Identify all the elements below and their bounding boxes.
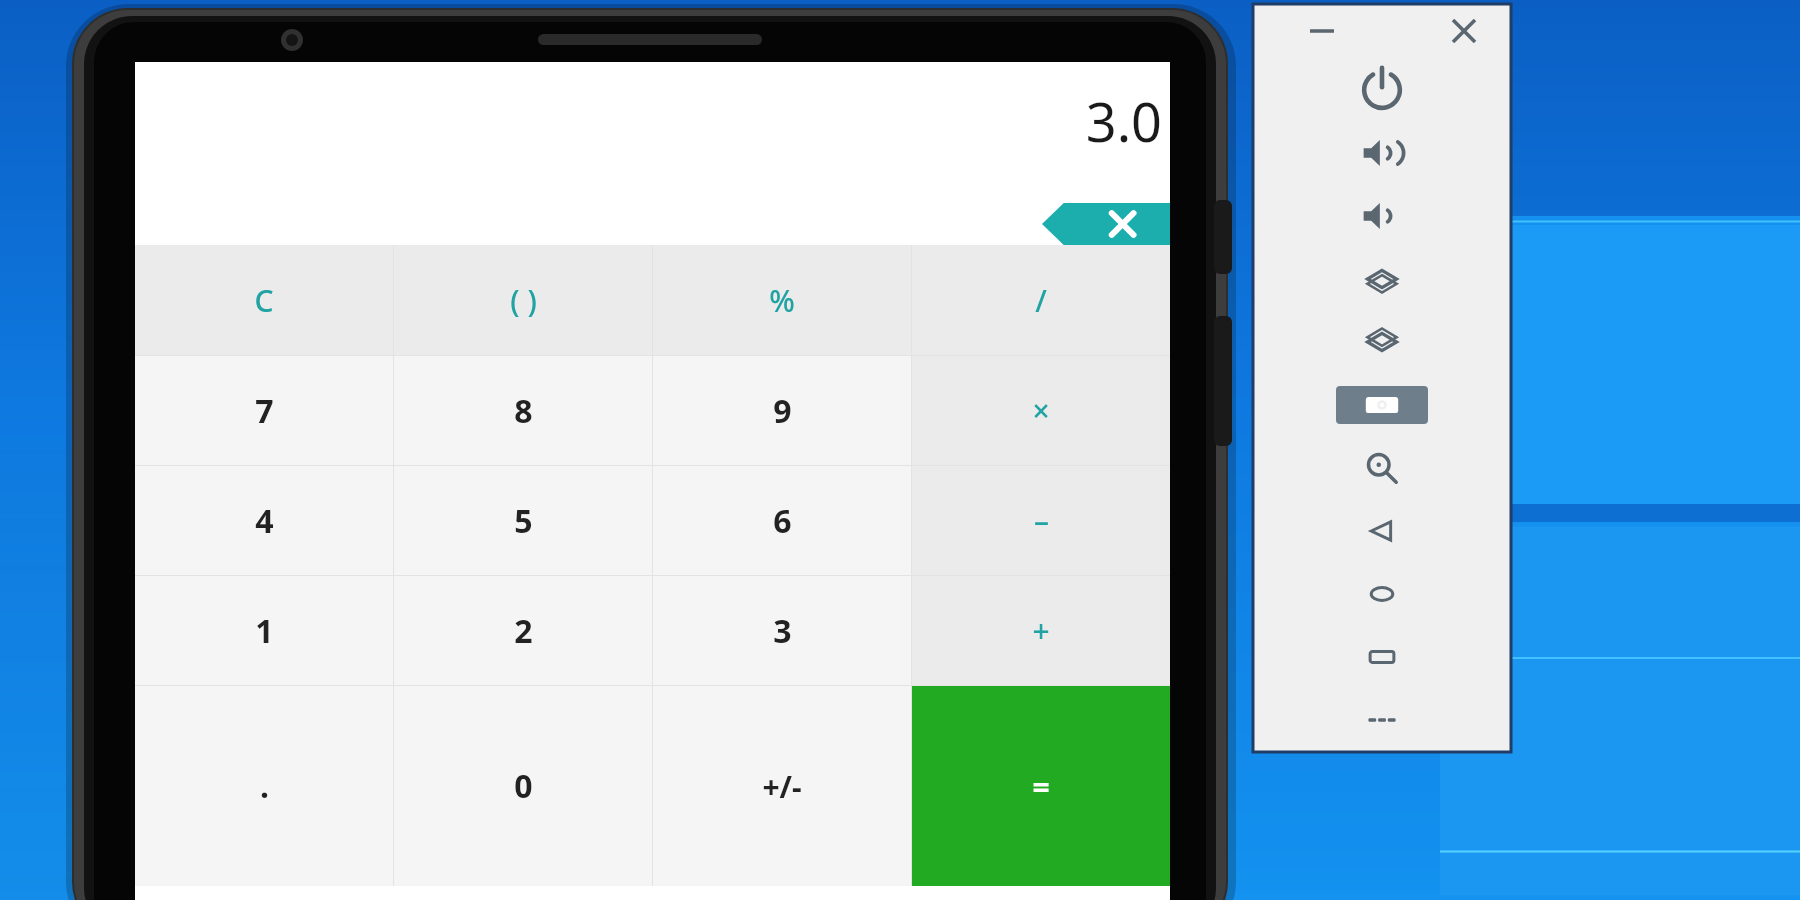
staticText: C <box>254 280 274 321</box>
staticText: + <box>1032 610 1050 651</box>
button[interactable]: Overview <box>1253 625 1511 688</box>
button[interactable]: % <box>653 245 911 355</box>
button[interactable]: Rotate right <box>1253 310 1511 373</box>
button[interactable]: 9 <box>653 356 911 465</box>
button[interactable]: 3 <box>653 576 911 685</box>
button[interactable]: 8 <box>394 356 652 465</box>
button[interactable]: 4 <box>135 466 393 575</box>
staticText: – <box>1034 500 1049 541</box>
button[interactable]: Rotate left <box>1253 247 1511 310</box>
staticText: × <box>1032 390 1050 431</box>
button[interactable]: × <box>912 356 1170 465</box>
button[interactable]: 0 <box>394 686 652 886</box>
staticText: 2 <box>514 609 533 653</box>
button[interactable]: Take screenshot <box>1253 373 1511 436</box>
staticText: ( ) <box>510 280 537 321</box>
button[interactable]: Power <box>1253 58 1511 121</box>
button[interactable]: Volume up <box>1253 121 1511 184</box>
staticText: / <box>1035 280 1047 321</box>
button[interactable]: 2 <box>394 576 652 685</box>
staticText: = <box>1032 766 1050 807</box>
button[interactable]: / <box>912 245 1170 355</box>
button[interactable]: More <box>1253 688 1511 751</box>
button[interactable]: Delete <box>1042 203 1170 245</box>
button[interactable]: C <box>135 245 393 355</box>
staticText: 3 <box>773 609 792 653</box>
button[interactable]: Close <box>1441 8 1487 54</box>
button[interactable]: 7 <box>135 356 393 465</box>
button[interactable]: Home <box>1253 562 1511 625</box>
button[interactable]: Volume down <box>1253 184 1511 247</box>
button[interactable]: Back <box>1253 499 1511 562</box>
staticText: 3.0 <box>1085 84 1162 158</box>
staticText: 8 <box>514 389 533 433</box>
staticText: % <box>769 280 795 321</box>
staticText: 1 <box>255 609 274 653</box>
button[interactable]: Zoom <box>1253 436 1511 499</box>
staticText: 0 <box>514 764 533 808</box>
button[interactable]: ( ) <box>394 245 652 355</box>
button[interactable]: Minimize <box>1299 8 1345 54</box>
button[interactable]: 1 <box>135 576 393 685</box>
button[interactable]: + <box>912 576 1170 685</box>
button[interactable]: +/- <box>653 686 911 886</box>
button[interactable]: . <box>135 686 393 886</box>
button[interactable]: 6 <box>653 466 911 575</box>
staticText: +/- <box>762 766 802 807</box>
button[interactable]: = <box>912 686 1170 886</box>
staticText: 9 <box>773 389 792 433</box>
button[interactable]: – <box>912 466 1170 575</box>
staticText: 7 <box>255 389 274 433</box>
staticText: 4 <box>255 499 274 543</box>
staticText: 5 <box>514 499 533 543</box>
staticText: . <box>260 764 269 808</box>
button[interactable]: 5 <box>394 466 652 575</box>
staticText: 6 <box>773 499 792 543</box>
